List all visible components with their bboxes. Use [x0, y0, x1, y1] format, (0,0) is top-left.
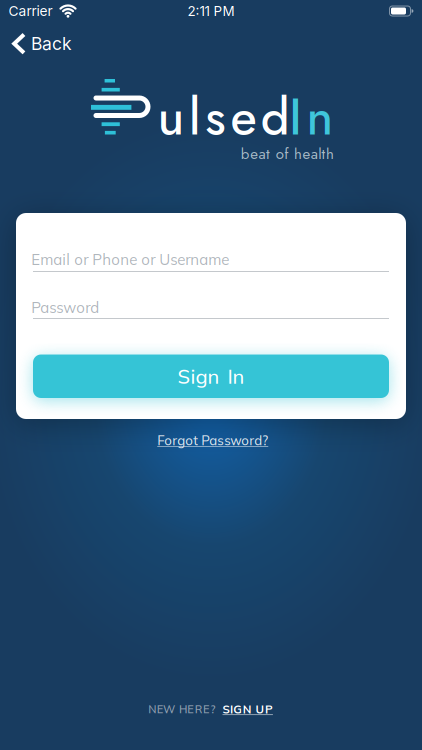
- button[interactable]: Forgot Password?: [154, 432, 268, 449]
- staticText: l: [189, 81, 201, 153]
- staticText: I: [289, 81, 302, 153]
- staticText: In: [227, 364, 244, 389]
- staticText: 2:11 PM: [187, 3, 234, 19]
- staticText: d: [261, 81, 290, 153]
- button[interactable]: Sign: [33, 354, 389, 398]
- staticText: n: [306, 81, 333, 153]
- staticText: Forgot Password?: [157, 432, 268, 449]
- staticText: Sign: [177, 364, 219, 389]
- staticText: Back: [31, 33, 72, 54]
- staticText: Carrier: [8, 3, 52, 19]
- staticText: s: [205, 81, 226, 153]
- staticText: SIGN UP: [222, 702, 273, 716]
- staticText: NEW HERE?: [148, 702, 215, 716]
- staticText: Password: [31, 298, 99, 317]
- staticText: beat of health: [241, 143, 334, 165]
- staticText: u: [157, 81, 184, 153]
- button[interactable]: Back: [12, 33, 72, 54]
- button[interactable]: SIGN UP: [222, 702, 276, 716]
- staticText: Email or Phone or Username: [31, 250, 229, 269]
- staticText: e: [230, 81, 256, 153]
